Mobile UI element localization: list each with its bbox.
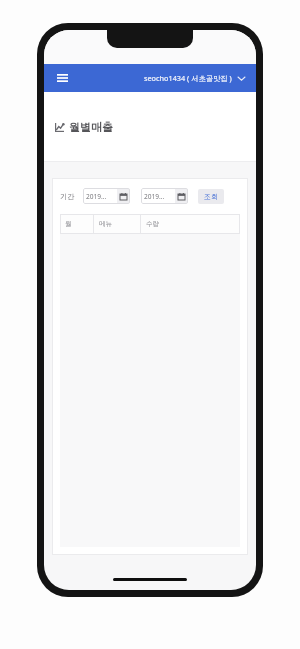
button[interactable]: 조회 — [198, 189, 224, 204]
staticText: seocho1434 ( 서초골맛집 ) — [144, 73, 232, 83]
button[interactable]: Open navigation menu — [53, 69, 71, 87]
staticText: 월별매출 — [69, 120, 113, 134]
staticText: 2019… — [86, 192, 107, 201]
staticText: 메뉴 — [99, 220, 113, 228]
staticText: 월 — [65, 220, 72, 228]
button[interactable]: seocho1434 ( 서초골맛집 ) — [142, 70, 247, 86]
staticText: 기간 — [60, 192, 75, 201]
button[interactable]: 2019… — [83, 188, 130, 204]
button[interactable]: 2019… — [141, 188, 188, 204]
staticText: 2019… — [144, 192, 165, 201]
other: Pick date — [117, 188, 130, 204]
staticText: 조회 — [204, 192, 218, 201]
other: Pick date — [175, 188, 188, 204]
staticText: 수량 — [146, 220, 160, 228]
